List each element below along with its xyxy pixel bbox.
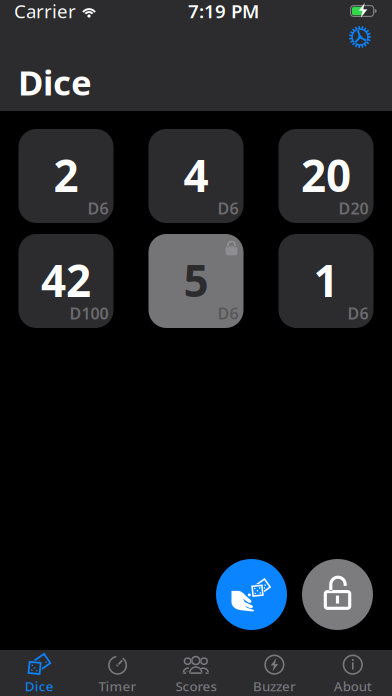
staticText: D6 [217, 198, 238, 219]
staticText: D100 [69, 303, 108, 324]
button[interactable]: Scores [157, 648, 235, 696]
staticText: 42 [41, 251, 91, 309]
button[interactable]: Settings [338, 22, 382, 52]
button[interactable]: Roll dice [216, 559, 287, 630]
button[interactable]: 5 [148, 234, 243, 328]
button[interactable]: 2 [18, 129, 113, 223]
staticText: D6 [87, 198, 108, 219]
button[interactable]: About [314, 648, 392, 696]
staticText: 5 [183, 251, 208, 309]
staticText: Dice [25, 677, 54, 695]
staticText: D6 [347, 303, 368, 324]
button[interactable]: Timer [78, 648, 157, 696]
button[interactable]: 1 [278, 234, 373, 328]
button[interactable]: 4 [148, 129, 243, 223]
staticText: 4 [183, 146, 208, 204]
staticText: 20 [301, 146, 351, 204]
staticText: Buzzer [253, 677, 296, 695]
staticText: Carrier [14, 0, 76, 23]
button[interactable]: Dice [0, 648, 78, 696]
staticText: Timer [99, 677, 137, 695]
staticText: About [334, 677, 372, 695]
button[interactable]: Buzzer [235, 648, 314, 696]
staticText: D6 [217, 303, 238, 324]
staticText: 1 [313, 251, 338, 309]
staticText: Scores [175, 677, 216, 695]
button[interactable]: 20 [278, 129, 373, 223]
staticText: Dice [18, 59, 92, 105]
button[interactable]: Unlock all dice [302, 559, 373, 630]
button[interactable]: 42 [18, 234, 113, 328]
staticText: 2 [53, 146, 78, 204]
staticText: 7:19 PM [188, 0, 259, 23]
staticText: D20 [338, 198, 368, 219]
